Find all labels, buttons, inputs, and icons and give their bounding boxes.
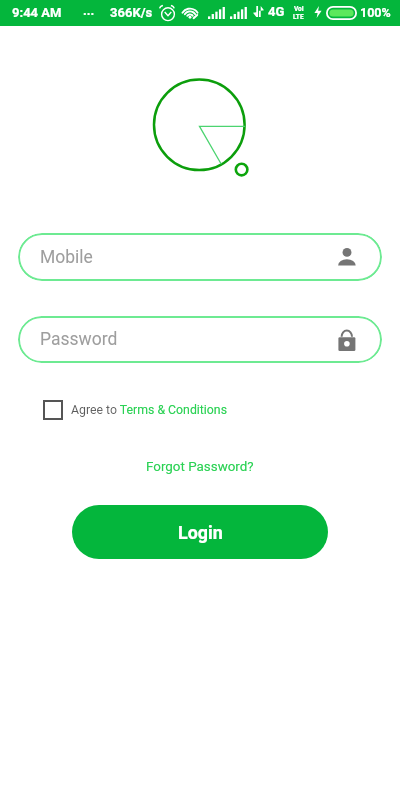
staticText: 366K/s [110,5,153,20]
staticText: Mobile [40,247,338,268]
button[interactable]: Mobile [18,233,382,281]
staticText: 4G [268,4,285,19]
staticText: Forgot Password? [146,459,254,475]
button[interactable]: Agree to Terms & Conditions [71,403,228,417]
staticText: ... [83,3,95,18]
button[interactable]: Password [18,316,382,363]
button[interactable]: Login [72,505,328,559]
button[interactable]: Forgot Password? [146,455,254,479]
staticText: VoI [294,5,304,13]
staticText: Login [178,522,223,543]
staticText: LTE [293,13,304,21]
staticText: Password [40,329,338,350]
button[interactable]: Agree to terms and conditions checkbox [43,400,63,420]
staticText: 100% [360,5,391,20]
staticText: 9:44 AM [12,5,62,20]
